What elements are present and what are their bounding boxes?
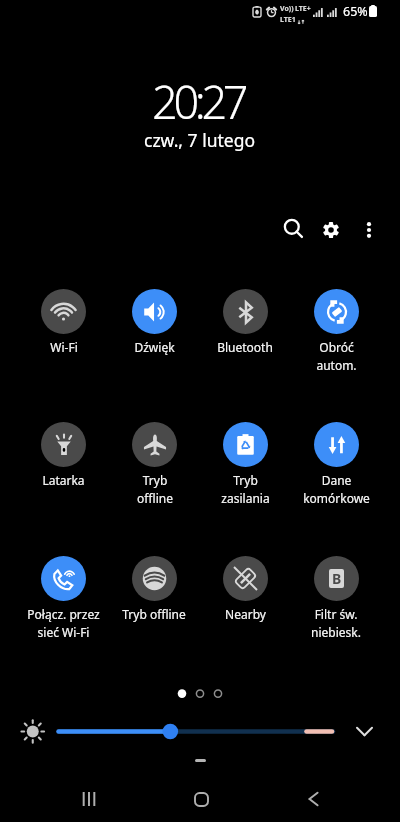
staticText: Vo)) [280,4,294,14]
staticText: Latarka [42,472,85,488]
button[interactable]: Back [291,777,335,821]
button[interactable]: Settings [309,208,353,252]
button[interactable]: Tryb offline [106,422,202,512]
staticText: LTE+ [295,4,311,14]
button[interactable]: Bluetooth [197,289,293,379]
button[interactable]: Brightness [0,712,400,752]
staticText: Połącz. przez sieć Wi-Fi [27,606,100,640]
staticText: Nearby [225,606,266,622]
button[interactable]: Recent apps [67,777,111,821]
staticText: 20:27 [152,71,245,132]
button[interactable]: Wi-Fi [15,289,111,379]
button[interactable]: Dźwięk [106,289,202,379]
staticText: LTE1 [280,15,296,25]
staticText: Bluetooth [217,339,273,355]
staticText: Dane komórkowe [303,472,370,506]
staticText: Tryb offline [137,472,173,506]
button[interactable]: Home [179,777,223,821]
button[interactable]: More options [347,208,391,252]
button[interactable]: Nearby [197,556,293,646]
button[interactable]: Tryb zasilania [197,422,293,512]
staticText: Tryb offline [122,606,186,622]
staticText: Obróć autom. [316,339,357,373]
button[interactable]: Połącz. przez sieć Wi-Fi [15,556,111,646]
button[interactable]: Obróć autom. [288,289,384,379]
staticText: 65% [343,3,368,20]
staticText: czw., 7 lutego [144,128,256,152]
button[interactable]: Tryb offline [106,556,202,646]
staticText: Dźwięk [134,339,175,355]
button[interactable]: Dane komórkowe [288,422,384,512]
button[interactable]: B [288,556,384,646]
staticText: Tryb zasilania [221,472,270,506]
staticText: Filtr św. niebiesk. [311,606,361,640]
staticText: Wi-Fi [50,339,78,355]
staticText: B [332,569,342,588]
button[interactable]: Latarka [15,422,111,512]
button[interactable]: Search [272,207,316,251]
